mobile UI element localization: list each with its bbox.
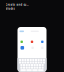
staticText: blocks [5,7,14,10]
staticText: Create and customize [5,3,28,6]
